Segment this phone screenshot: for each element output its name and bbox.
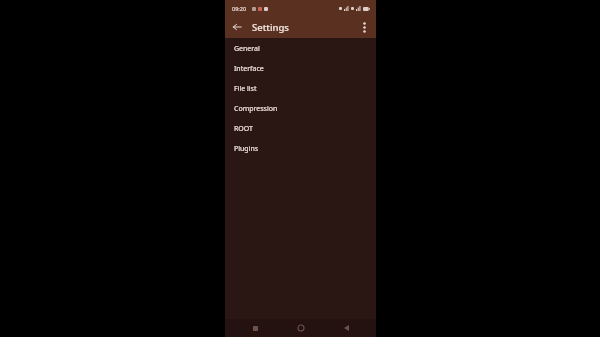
staticText: General xyxy=(234,44,260,54)
staticText: Interface xyxy=(234,64,264,74)
button[interactable]: More options xyxy=(355,18,373,36)
staticText: ROOT xyxy=(234,124,253,134)
button[interactable]: Home xyxy=(286,319,316,337)
button[interactable]: Plugins xyxy=(225,139,376,159)
button[interactable]: General xyxy=(225,39,376,59)
button[interactable]: File list xyxy=(225,79,376,99)
button[interactable]: Back xyxy=(331,319,361,337)
button[interactable]: Recents xyxy=(240,319,270,337)
button[interactable]: Compression xyxy=(225,99,376,119)
button[interactable]: Interface xyxy=(225,59,376,79)
button[interactable]: ROOT xyxy=(225,119,376,139)
staticText: Compression xyxy=(234,104,278,114)
staticText: 09:20 xyxy=(232,5,247,12)
staticText: File list xyxy=(234,84,257,94)
button[interactable]: Back xyxy=(228,18,246,36)
staticText: Plugins xyxy=(234,144,259,154)
staticText: Settings xyxy=(252,21,289,34)
